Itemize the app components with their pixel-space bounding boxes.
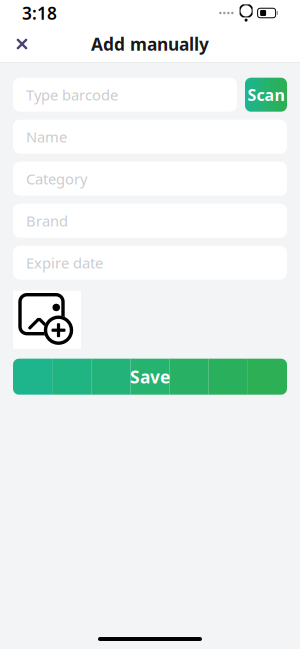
staticText: Scan — [247, 84, 284, 105]
staticText: Name — [26, 127, 67, 146]
button[interactable]: Close — [5, 27, 39, 61]
button[interactable]: Scan — [245, 78, 287, 112]
button[interactable]: Add photo — [13, 291, 81, 349]
staticText: Brand — [26, 211, 68, 230]
staticText: Expire date — [26, 253, 103, 272]
staticText: 3:18 — [22, 1, 57, 24]
staticText: Category — [26, 169, 87, 188]
staticText: Save — [130, 365, 170, 388]
button[interactable]: Save — [13, 359, 287, 395]
staticText: Add manually — [91, 32, 209, 55]
staticText: Type barcode — [26, 85, 118, 104]
